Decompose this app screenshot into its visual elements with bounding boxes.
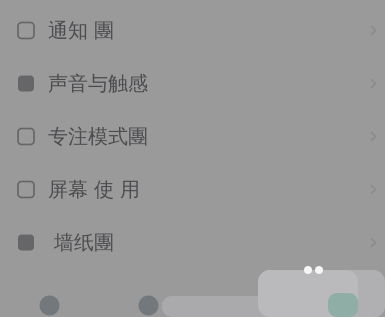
staticText: 通知 團: [48, 18, 114, 43]
staticText: 屏幕 使 用: [48, 177, 140, 202]
button[interactable]: 通知 團: [0, 4, 385, 57]
button[interactable]: Search: [99, 302, 198, 317]
button[interactable]: 屏幕 使 用: [0, 163, 385, 216]
staticText: 专注模式團: [48, 124, 148, 149]
button[interactable]: 声音与触感: [0, 57, 385, 110]
staticText: 声音与触感: [48, 71, 148, 96]
staticText: 墙纸團: [48, 230, 114, 255]
button[interactable]: 墙纸團: [0, 216, 385, 269]
button[interactable]: Home: [0, 302, 99, 317]
button[interactable]: 专注模式團: [0, 110, 385, 163]
